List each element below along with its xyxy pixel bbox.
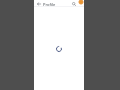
button[interactable]: Account	[78, 0, 84, 5]
staticText: Profile	[43, 2, 56, 7]
button[interactable]: Back	[34, 0, 43, 8]
button[interactable]: Search	[70, 0, 78, 8]
